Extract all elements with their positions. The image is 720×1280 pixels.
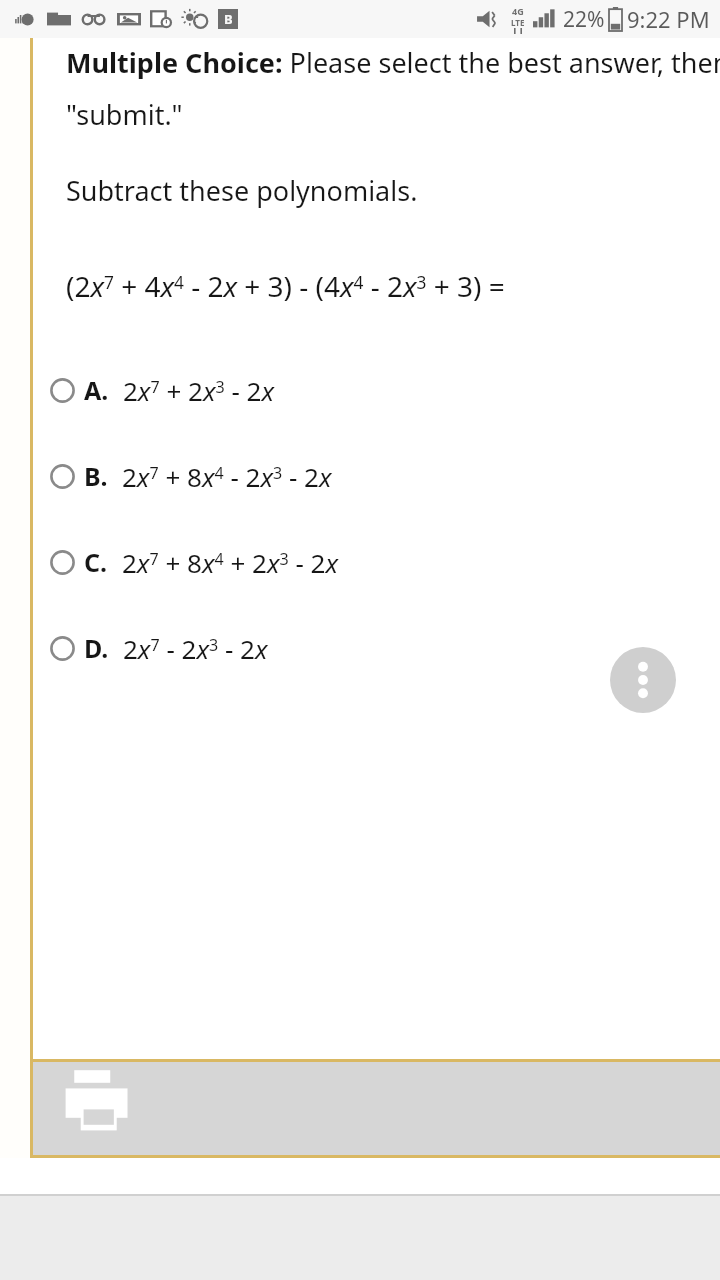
staticText: A.: [84, 373, 109, 407]
staticText: "submit.": [66, 96, 183, 130]
staticText: LTE: [511, 17, 525, 28]
staticText: Subtract these polynomials.: [66, 172, 418, 209]
staticText: D.: [84, 631, 109, 665]
staticText: 22%: [563, 5, 605, 34]
staticText: B: [224, 10, 233, 28]
staticText: 4G: [512, 5, 524, 17]
button[interactable]: Print: [62, 1066, 134, 1136]
staticText: Multiple Choice: Please select the best …: [66, 44, 720, 81]
staticText: 2x7 + 8x4 - 2x3 - 2x: [122, 459, 332, 494]
staticText: C.: [84, 545, 108, 579]
staticText: 9:22 PM: [627, 4, 710, 34]
button[interactable]: A.: [0, 347, 720, 433]
button[interactable]: D.: [0, 605, 720, 691]
button[interactable]: C.: [0, 519, 720, 605]
staticText: B.: [84, 459, 108, 493]
staticText: 2x7 + 2x3 - 2x: [123, 373, 275, 408]
button[interactable]: B.: [0, 433, 720, 519]
staticText: (2x7 + 4x4 - 2x + 3) - (4x4 - 2x3 + 3) =: [66, 267, 505, 305]
staticText: 2x7 + 8x4 + 2x3 - 2x: [122, 545, 339, 580]
staticText: 2x7 - 2x3 - 2x: [123, 631, 268, 666]
button[interactable]: More options: [610, 647, 676, 713]
